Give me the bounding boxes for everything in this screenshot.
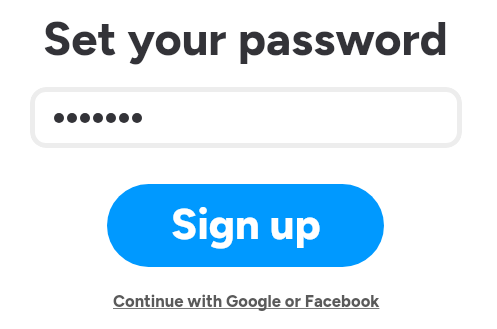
staticText: Sign up (171, 198, 321, 250)
staticText: Set your password (43, 11, 448, 67)
staticText: Continue with Google or Facebook (113, 291, 380, 311)
button[interactable]: Sign up (107, 184, 384, 267)
button[interactable]: Continue with Google or Facebook (113, 291, 380, 311)
button[interactable]: Password field (30, 87, 462, 148)
